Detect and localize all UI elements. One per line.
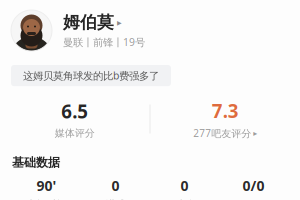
- button[interactable]: 7.3: [150, 98, 300, 140]
- staticText: 助攻: [174, 198, 194, 200]
- staticText: ▸: [253, 129, 257, 138]
- staticText: 90': [36, 176, 56, 195]
- staticText: 曼联丨前锋丨19号: [63, 35, 145, 49]
- staticText: 基础数据: [12, 155, 60, 170]
- staticText: 6.5: [61, 98, 88, 124]
- staticText: 进球: [105, 198, 125, 200]
- staticText: 姆伯莫: [63, 12, 114, 33]
- staticText: 0/0: [242, 176, 264, 195]
- staticText: 出场时间: [26, 198, 66, 200]
- staticText: 0: [180, 176, 188, 195]
- staticText: 0: [111, 176, 119, 195]
- staticText: 277吧友评分: [193, 126, 251, 140]
- staticText: 这姆贝莫角球发的比b费强多了: [23, 68, 159, 83]
- staticText: 媒体评分: [55, 127, 95, 139]
- button[interactable]: Player photo: [11, 10, 52, 51]
- staticText: ▸: [117, 17, 122, 28]
- staticText: 7.3: [212, 98, 239, 123]
